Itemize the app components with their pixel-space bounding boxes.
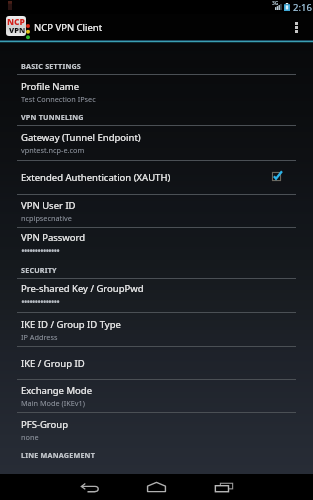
staticText: NCP VPN Client xyxy=(34,21,103,34)
button[interactable]: PFS-Group xyxy=(0,413,313,447)
staticText: •••••••••••••• xyxy=(21,295,59,309)
staticText: NCP xyxy=(7,16,25,28)
staticText: Exchange Mode xyxy=(21,384,92,397)
staticText: SECURITY xyxy=(21,265,57,275)
staticText: Gateway (Tunnel Endpoint) xyxy=(21,131,141,144)
button[interactable]: Recent apps xyxy=(200,474,247,500)
staticText: none xyxy=(21,432,39,442)
staticText: Extended Authentication (XAUTH) xyxy=(21,171,171,184)
staticText: LINE MANAGEMENT xyxy=(21,450,95,460)
staticText: VPN Password xyxy=(21,231,86,244)
staticText: •••••••••••••• xyxy=(21,244,59,258)
staticText: VPN User ID xyxy=(21,199,76,212)
staticText: Pre-shared Key / GroupPwd xyxy=(21,282,144,295)
staticText: Profile Name xyxy=(21,80,80,93)
button[interactable]: Extended Authentication (XAUTH) xyxy=(0,161,313,194)
button[interactable]: Profile Name xyxy=(0,75,313,109)
button[interactable]: Home xyxy=(133,474,180,500)
staticText: ncpipsecnative xyxy=(21,213,72,223)
staticText: 3G xyxy=(272,0,279,7)
staticText: vpntest.ncp-e.com xyxy=(21,145,85,155)
staticText: IP Address xyxy=(21,332,58,342)
staticText: 2:16 xyxy=(293,1,312,14)
staticText: VPN TUNNELING xyxy=(21,112,84,122)
button[interactable]: IKE / Group ID xyxy=(0,347,313,379)
staticText: Test Connection IPsec xyxy=(21,94,96,104)
button[interactable]: VPN Password xyxy=(0,228,313,262)
staticText: Main Mode (IKEv1) xyxy=(21,398,85,408)
button[interactable]: Back xyxy=(66,474,113,500)
button[interactable]: Exchange Mode xyxy=(0,380,313,412)
staticText: PFS-Group xyxy=(21,418,69,431)
button[interactable]: VPN User ID xyxy=(0,195,313,227)
button[interactable]: More options xyxy=(279,14,313,40)
staticText: IKE ID / Group ID Type xyxy=(21,318,121,331)
button[interactable]: Pre-shared Key / GroupPwd xyxy=(0,279,313,312)
staticText: BASIC SETTINGS xyxy=(21,61,82,71)
button[interactable]: IKE ID / Group ID Type xyxy=(0,313,313,346)
staticText: IKE / Group ID xyxy=(21,357,85,370)
staticText: VPN xyxy=(9,25,26,35)
button[interactable]: Gateway (Tunnel Endpoint) xyxy=(0,126,313,160)
